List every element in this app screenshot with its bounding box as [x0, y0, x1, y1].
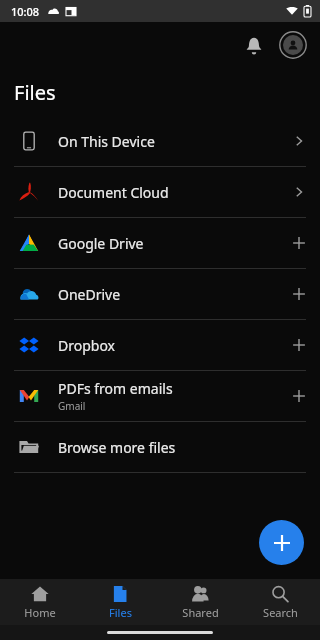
- button[interactable]: Shared: [160, 579, 240, 625]
- staticText: Gmail: [58, 399, 86, 413]
- staticText: Browse more files: [58, 438, 176, 457]
- staticText: OneDrive: [58, 285, 121, 304]
- button[interactable]: Document Cloud: [0, 167, 320, 217]
- button[interactable]: Google Drive: [0, 218, 320, 268]
- button[interactable]: OneDrive: [0, 269, 320, 319]
- staticText: Search: [263, 605, 298, 620]
- staticText: Home: [24, 605, 56, 620]
- button[interactable]: Create new file: [259, 520, 304, 565]
- staticText: Files: [14, 79, 56, 106]
- staticText: 10:08: [11, 4, 40, 19]
- staticText: PDFs from emails: [58, 379, 173, 398]
- button[interactable]: Files: [80, 579, 160, 625]
- button[interactable]: Home: [0, 579, 80, 625]
- staticText: On This Device: [58, 132, 155, 151]
- staticText: Dropbox: [58, 336, 116, 355]
- staticText: Shared: [182, 605, 219, 620]
- staticText: Files: [109, 605, 132, 620]
- button[interactable]: Search: [240, 579, 320, 625]
- button[interactable]: On This Device: [0, 116, 320, 166]
- button[interactable]: Profile: [278, 30, 308, 60]
- button[interactable]: Notifications: [236, 27, 272, 63]
- button[interactable]: PDFs from emails: [0, 371, 320, 421]
- staticText: Google Drive: [58, 234, 144, 253]
- button[interactable]: Dropbox: [0, 320, 320, 370]
- button[interactable]: Browse more files: [0, 422, 320, 472]
- staticText: Document Cloud: [58, 183, 169, 202]
